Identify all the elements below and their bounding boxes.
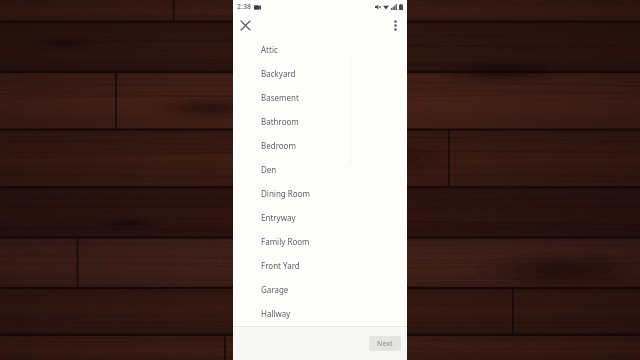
staticText: 2:38 [237,2,251,12]
button[interactable]: Dining Room [233,181,407,205]
button[interactable]: Den [233,157,407,181]
staticText: Bathroom [261,116,299,127]
staticText: Family Room [261,236,310,247]
button[interactable]: Close [235,15,255,35]
button[interactable]: Entryway [233,205,407,229]
staticText: Hallway [261,308,291,319]
button[interactable]: Attic [233,37,407,61]
button[interactable]: Front Yard [233,253,407,277]
staticText: Dining Room [261,188,310,199]
staticText: Bedroom [261,140,296,151]
button[interactable]: Bathroom [233,109,407,133]
staticText: Next [377,339,393,349]
staticText: Garage [261,284,289,295]
button[interactable]: Basement [233,85,407,109]
button[interactable]: Hallway [233,301,407,325]
staticText: Entryway [261,212,296,223]
button[interactable]: Backyard [233,61,407,85]
button[interactable]: Bedroom [233,133,407,157]
staticText: Backyard [261,68,296,79]
staticText: Front Yard [261,260,300,271]
button[interactable]: Family Room [233,229,407,253]
button[interactable]: Garage [233,277,407,301]
button[interactable]: Next [369,336,401,351]
staticText: Basement [261,92,299,103]
button[interactable]: More options [385,15,405,35]
staticText: Attic [261,44,278,55]
staticText: Den [261,164,277,175]
